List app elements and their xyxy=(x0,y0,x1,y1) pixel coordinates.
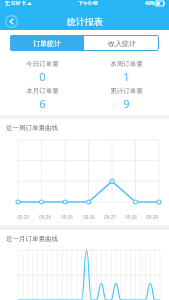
staticText: 05-25 xyxy=(61,214,73,220)
staticText: 订单统计 xyxy=(33,39,61,48)
staticText: 无 SIM 卡 xyxy=(4,0,27,7)
staticText: 9 xyxy=(123,96,130,111)
staticText: 6 xyxy=(39,96,46,111)
staticText: 收入统计 xyxy=(108,39,136,48)
button[interactable]: 累计订单量 xyxy=(84,87,169,111)
staticText: 05-24 xyxy=(39,214,51,220)
staticText: 05-27 xyxy=(104,214,116,220)
button[interactable]: 本月订单量 xyxy=(0,87,84,111)
staticText: 今日订单量 xyxy=(26,60,59,68)
button[interactable]: 今日订单量 xyxy=(0,60,84,84)
staticText: 05-28 xyxy=(125,214,137,220)
staticText: 05-29 xyxy=(146,214,158,220)
staticText: 48% xyxy=(144,0,156,7)
button[interactable]: Back xyxy=(5,15,18,28)
button[interactable]: 本周订单量 xyxy=(84,60,169,84)
staticText: 0 xyxy=(39,69,46,84)
staticText: 05-23 xyxy=(17,214,29,220)
staticText: 05-26 xyxy=(83,214,95,220)
button[interactable]: 订单统计 xyxy=(10,35,84,51)
staticText: 下午6:48 xyxy=(78,0,98,7)
staticText: 近一月订单量曲线 xyxy=(6,235,58,243)
staticText: 本周订单量 xyxy=(110,60,143,68)
staticText: 累计订单量 xyxy=(110,87,143,95)
staticText: 近一周订单量曲线 xyxy=(6,124,58,132)
staticText: 统计报表 xyxy=(67,16,103,27)
staticText: 1 xyxy=(123,69,130,84)
staticText: 本月订单量 xyxy=(26,87,59,95)
button[interactable]: 收入统计 xyxy=(84,35,159,51)
